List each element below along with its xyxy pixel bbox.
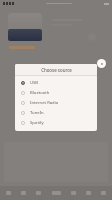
button[interactable]: Spotify [15, 118, 97, 128]
button[interactable]: Bluetooth [15, 88, 97, 98]
button[interactable]: USB [15, 78, 97, 88]
staticText: Choose source [41, 67, 72, 73]
staticText: Spotify [30, 120, 44, 126]
button[interactable]: Internet Radio [15, 98, 97, 108]
button[interactable]: TuneIn [15, 108, 97, 118]
button[interactable]: Close [97, 59, 106, 68]
staticText: Bluetooth [30, 90, 50, 96]
staticText: Internet Radio [30, 100, 59, 106]
staticText: TuneIn [30, 110, 44, 116]
staticText: USB [30, 80, 39, 86]
